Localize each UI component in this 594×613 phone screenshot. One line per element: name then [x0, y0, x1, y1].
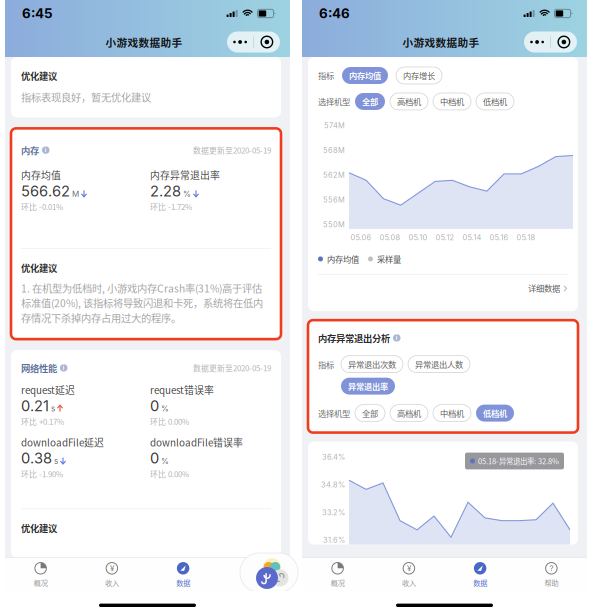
staticText: 内存均值 — [21, 168, 61, 182]
staticText: 环比 -0.01% — [21, 201, 63, 212]
button[interactable]: 数据 — [147, 556, 219, 593]
staticText: 小游戏数据助手 — [402, 34, 479, 50]
staticText: 概况 — [331, 577, 345, 588]
staticText: 概况 — [34, 577, 48, 588]
staticText: 异常退出人数 — [415, 358, 463, 370]
staticText: 0 — [150, 397, 159, 415]
staticText: 550M — [323, 220, 345, 229]
staticText: downloadFile错误率 — [150, 435, 243, 449]
staticText: 中档机 — [440, 95, 464, 107]
staticText: 数据 — [473, 577, 487, 588]
staticText: 中档机 — [440, 407, 464, 419]
button[interactable]: Close — [254, 32, 280, 52]
button[interactable]: 中档机 — [433, 405, 471, 422]
staticText: 6:45 — [22, 5, 53, 21]
staticText: 小游戏数据助手 — [105, 34, 182, 50]
button[interactable]: ? — [516, 556, 587, 593]
staticText: 详细数据 — [528, 282, 560, 294]
staticText: 环比 -1.72% — [150, 201, 192, 212]
staticText: 网络性能 — [21, 361, 57, 375]
button[interactable]: 内存均值 — [342, 67, 388, 84]
button[interactable]: 全部 — [355, 405, 385, 422]
staticText: 0.38 — [21, 449, 52, 467]
staticText: request延迟 — [21, 383, 75, 397]
button[interactable]: ? — [219, 556, 290, 593]
staticText: 数据更新至2020-05-19 — [193, 362, 271, 374]
staticText: 高档机 — [397, 407, 421, 419]
staticText: 异常退出率 — [348, 380, 388, 392]
staticText: 异常退出次数 — [348, 358, 396, 370]
staticText: 0 — [150, 449, 159, 467]
staticText: 05.06 05.08 05.10 05.12 05.14 05.16 05.1… — [350, 233, 535, 242]
staticText: 556M — [323, 195, 345, 204]
staticText: 内存增长 — [403, 69, 435, 81]
button[interactable]: Recently used mini programs — [240, 553, 298, 592]
staticText: ¥ — [407, 563, 411, 573]
button[interactable]: 高档机 — [390, 93, 428, 110]
staticText: 内存 — [21, 143, 39, 157]
staticText: 36.4% — [322, 453, 345, 462]
button[interactable]: 全部 — [355, 93, 385, 110]
button[interactable]: 详细数据 — [318, 275, 568, 301]
staticText: 指标 — [318, 359, 334, 371]
staticText: i — [45, 147, 47, 153]
staticText: 1. 在机型为低档时, 小游戏内存Crash率(31%)高于评估标准值(20%)… — [21, 280, 263, 325]
staticText: 6:46 — [319, 5, 350, 21]
staticText: % — [161, 404, 169, 413]
staticText: 优化建议 — [21, 261, 57, 274]
staticText: % — [161, 456, 169, 466]
staticText: request错误率 — [150, 383, 214, 397]
staticText: % — [183, 189, 191, 199]
staticText: 05.18-异常退出率: 32.8% — [478, 456, 559, 466]
staticText: s — [54, 456, 58, 466]
button[interactable]: More — [524, 32, 550, 52]
staticText: › — [563, 281, 568, 295]
button[interactable]: 异常退出人数 — [408, 356, 470, 373]
staticText: 环比 -1.90% — [21, 468, 63, 479]
staticText: 内存异常退出分析 — [318, 331, 390, 345]
button[interactable]: 中档机 — [433, 93, 471, 110]
staticText: i — [63, 364, 65, 371]
button[interactable]: Close — [551, 32, 577, 52]
staticText: 选择机型 — [318, 95, 350, 107]
staticText: 高档机 — [397, 95, 421, 107]
staticText: 帮助 — [544, 577, 558, 588]
staticText: 566.62 — [21, 182, 70, 200]
staticText: 优化建议 — [21, 521, 57, 535]
staticText: ¥ — [110, 563, 114, 573]
button[interactable]: 异常退出次数 — [341, 356, 403, 373]
staticText: 34.8% — [321, 480, 345, 489]
staticText: downloadFile延迟 — [21, 435, 104, 449]
staticText: 收入 — [105, 577, 119, 588]
staticText: 指标 — [318, 69, 334, 81]
staticText: s — [51, 404, 55, 413]
staticText: 采样量 — [377, 253, 401, 265]
staticText: 数据 — [176, 577, 190, 588]
button[interactable]: 异常退出率 — [341, 378, 395, 395]
button[interactable]: More — [227, 32, 253, 52]
staticText: 指标表现良好，暂无优化建议 — [21, 89, 151, 104]
button[interactable]: 低档机 — [476, 405, 514, 422]
staticText: 帮助 — [247, 577, 261, 588]
staticText: 2.28 — [150, 182, 181, 200]
button[interactable]: 低档机 — [476, 93, 514, 110]
button[interactable]: ¥ — [76, 556, 147, 593]
button[interactable]: ¥ — [373, 556, 444, 593]
staticText: 全部 — [362, 95, 378, 107]
staticText: ? — [549, 563, 553, 573]
button[interactable]: 概况 — [5, 556, 76, 593]
staticText: 低档机 — [483, 95, 507, 107]
staticText: 31.6% — [323, 536, 345, 545]
staticText: 内存异常退出率 — [150, 168, 220, 182]
staticText: 562M — [323, 170, 345, 179]
button[interactable]: 内存增长 — [396, 67, 442, 84]
button[interactable]: 数据 — [444, 556, 516, 593]
staticText: i — [396, 334, 398, 341]
button[interactable]: 高档机 — [390, 405, 428, 422]
staticText: 内存均值 — [349, 69, 381, 81]
staticText: 环比 0.00% — [150, 468, 189, 479]
button[interactable]: 概况 — [302, 556, 373, 593]
staticText: 574M — [324, 121, 345, 130]
staticText: 低档机 — [483, 407, 507, 419]
